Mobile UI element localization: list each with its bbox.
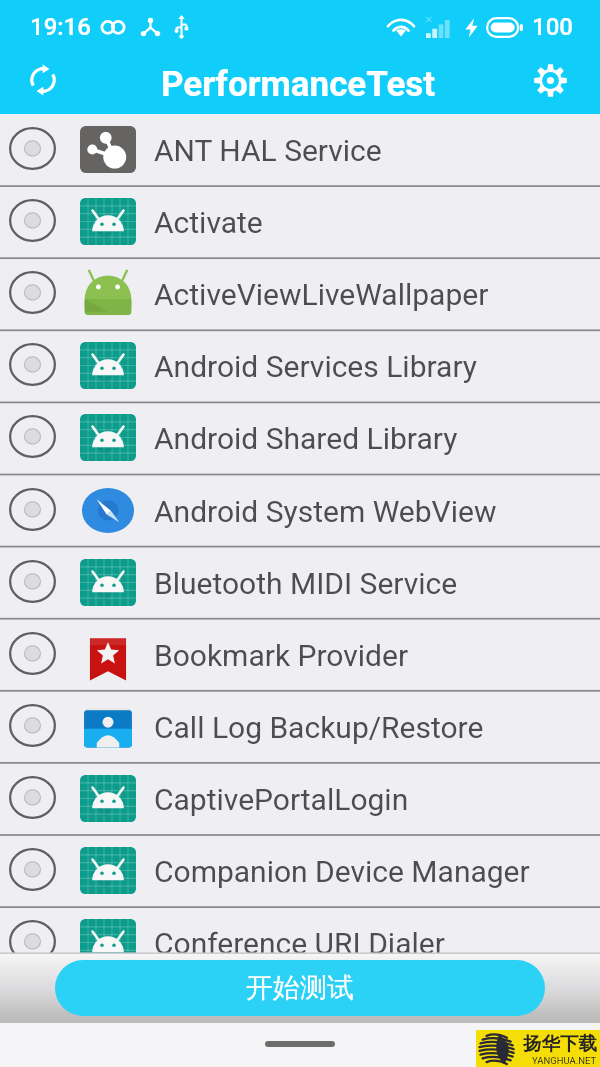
- button[interactable]: Companion Device Manager: [0, 835, 600, 907]
- staticText: 19:16: [30, 13, 91, 41]
- button[interactable]: Refresh: [19, 60, 67, 108]
- button[interactable]: ActiveViewLiveWallpaper: [0, 258, 600, 330]
- staticText: 扬华下载: [523, 1032, 597, 1055]
- button[interactable]: Call Log Backup/Restore: [0, 691, 600, 763]
- button[interactable]: Activate: [0, 186, 600, 258]
- button[interactable]: ANT HAL Service: [0, 114, 600, 186]
- staticText: ActiveViewLiveWallpaper: [154, 277, 489, 312]
- staticText: Companion Device Manager: [154, 854, 530, 889]
- staticText: Android System WebView: [154, 494, 497, 529]
- staticText: Call Log Backup/Restore: [154, 710, 484, 745]
- button[interactable]: CaptivePortalLogin: [0, 763, 600, 835]
- staticText: ANT HAL Service: [154, 133, 382, 168]
- button[interactable]: Android System WebView: [0, 475, 600, 547]
- staticText: 100: [532, 13, 573, 41]
- button[interactable]: Conference URI Dialer: [0, 907, 600, 979]
- staticText: 开始测试: [246, 971, 354, 1005]
- staticText: Bluetooth MIDI Service: [154, 566, 458, 601]
- staticText: YANGHUA.NET: [532, 1055, 597, 1066]
- staticText: PerformanceTest: [161, 64, 436, 105]
- button[interactable]: Bluetooth MIDI Service: [0, 547, 600, 619]
- staticText: Android Shared Library: [154, 421, 458, 456]
- button[interactable]: Settings: [528, 62, 572, 106]
- button[interactable]: 开始测试: [55, 960, 545, 1016]
- staticText: Android Services Library: [154, 349, 478, 384]
- staticText: Conference URI Dialer: [154, 926, 445, 961]
- staticText: Bookmark Provider: [154, 638, 409, 673]
- button[interactable]: Android Services Library: [0, 330, 600, 402]
- staticText: CaptivePortalLogin: [154, 782, 409, 817]
- button[interactable]: Android Shared Library: [0, 402, 600, 474]
- button[interactable]: Bookmark Provider: [0, 619, 600, 691]
- staticText: Activate: [154, 205, 263, 240]
